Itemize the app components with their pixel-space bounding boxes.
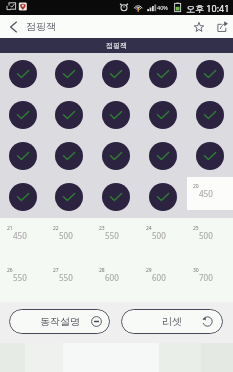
staticText: 500	[199, 230, 213, 241]
staticText: 500	[152, 230, 166, 241]
button[interactable]: 동작설명	[9, 309, 110, 334]
staticText: 40%	[157, 4, 168, 11]
staticText: 550	[59, 272, 73, 283]
button[interactable]	[46, 53, 92, 94]
button[interactable]: 리셋	[121, 309, 223, 334]
staticText: 오후 10:41	[186, 2, 230, 14]
button[interactable]	[0, 135, 46, 176]
staticText: 700	[199, 272, 213, 283]
staticText: 23	[99, 225, 105, 232]
staticText: 30	[193, 267, 199, 274]
button[interactable]: 24	[139, 218, 186, 260]
button[interactable]	[0, 53, 46, 94]
button[interactable]	[186, 94, 233, 135]
button[interactable]: 22	[46, 218, 92, 260]
staticText: 20	[193, 183, 199, 190]
staticText: 27	[53, 267, 59, 274]
staticText: 점핑잭	[106, 41, 127, 50]
staticText: 26	[7, 267, 13, 274]
button[interactable]: 28	[92, 260, 139, 302]
button[interactable]: Back	[0, 15, 26, 38]
staticText: 29	[146, 267, 152, 274]
button[interactable]: 23	[92, 218, 139, 260]
button[interactable]: 26	[0, 260, 46, 302]
button[interactable]	[139, 53, 186, 94]
button[interactable]: 27	[46, 260, 92, 302]
staticText: 28	[99, 267, 105, 274]
button[interactable]	[46, 176, 92, 218]
button[interactable]	[46, 94, 92, 135]
button[interactable]: 20	[186, 176, 233, 218]
button[interactable]: 29	[139, 260, 186, 302]
button[interactable]	[92, 94, 139, 135]
staticText: 500	[59, 230, 73, 241]
button[interactable]	[92, 135, 139, 176]
staticText: 22	[53, 225, 59, 232]
staticText: 동작설명	[40, 315, 80, 328]
staticText: 점핑잭	[26, 20, 56, 33]
button[interactable]	[46, 135, 92, 176]
button[interactable]	[139, 135, 186, 176]
button[interactable]	[186, 53, 233, 94]
button[interactable]: 25	[186, 218, 233, 260]
staticText: 25	[193, 225, 199, 232]
button[interactable]	[139, 176, 186, 218]
staticText: 600	[105, 272, 119, 283]
button[interactable]	[139, 94, 186, 135]
button[interactable]	[186, 135, 233, 176]
staticText: 600	[152, 272, 166, 283]
staticText: 리셋	[162, 315, 182, 328]
button[interactable]	[0, 176, 46, 218]
staticText: 21	[7, 225, 13, 232]
button[interactable]	[92, 53, 139, 94]
staticText: 450	[13, 230, 27, 241]
staticText: 450	[199, 188, 213, 199]
button[interactable]	[92, 176, 139, 218]
staticText: 24	[146, 225, 152, 232]
button[interactable]: 21	[0, 218, 46, 260]
staticText: 550	[105, 230, 119, 241]
button[interactable]: Share	[211, 15, 233, 38]
staticText: 550	[13, 272, 27, 283]
button[interactable]: Favorite	[187, 15, 211, 38]
button[interactable]	[0, 94, 46, 135]
button[interactable]: 30	[186, 260, 233, 302]
